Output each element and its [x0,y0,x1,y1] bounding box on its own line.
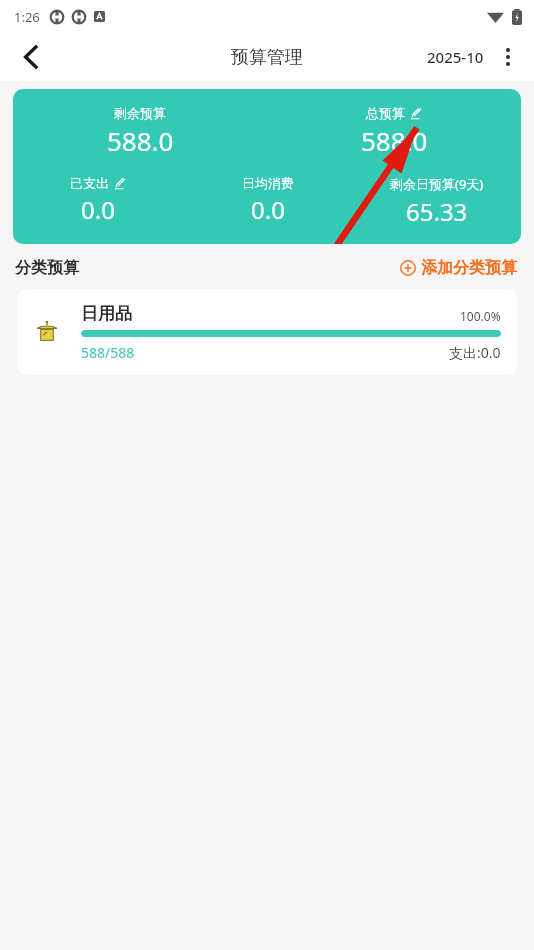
staticText: 100.0% [460,308,501,324]
staticText: 添加分类预算 [421,258,517,278]
staticText: 剩余预算 [114,105,166,121]
staticText: 日均消费 [242,175,294,191]
staticText: 588.0 [361,123,428,158]
staticText: 剩余日预算(9天) [390,175,484,193]
staticText: 分类预算 [15,258,79,278]
staticText: 0.0 [251,193,285,226]
button[interactable]: 日用品 [17,289,517,375]
staticText: 1:26 [14,8,40,26]
staticText: 已支出 [70,175,109,191]
staticText: 2025-10 [427,47,484,67]
staticText: 总预算 [366,105,405,121]
button[interactable]: 2025-10 [423,41,488,73]
button[interactable]: Edit 已支出 [114,177,127,190]
staticText: 588/588 [81,343,135,362]
button[interactable]: 添加分类预算 [398,255,519,281]
button[interactable]: 剩余预算 [13,89,521,244]
staticText: 0.0 [81,193,115,226]
staticText: 支出:0.0 [449,343,501,362]
staticText: 65.33 [406,195,468,228]
button[interactable]: Edit 总预算 [410,107,423,120]
staticText: 日用品 [81,303,132,324]
button[interactable]: More options [488,37,528,77]
staticText: 588.0 [107,123,174,158]
staticText: 预算管理 [231,46,303,69]
button[interactable]: Back [8,35,52,79]
